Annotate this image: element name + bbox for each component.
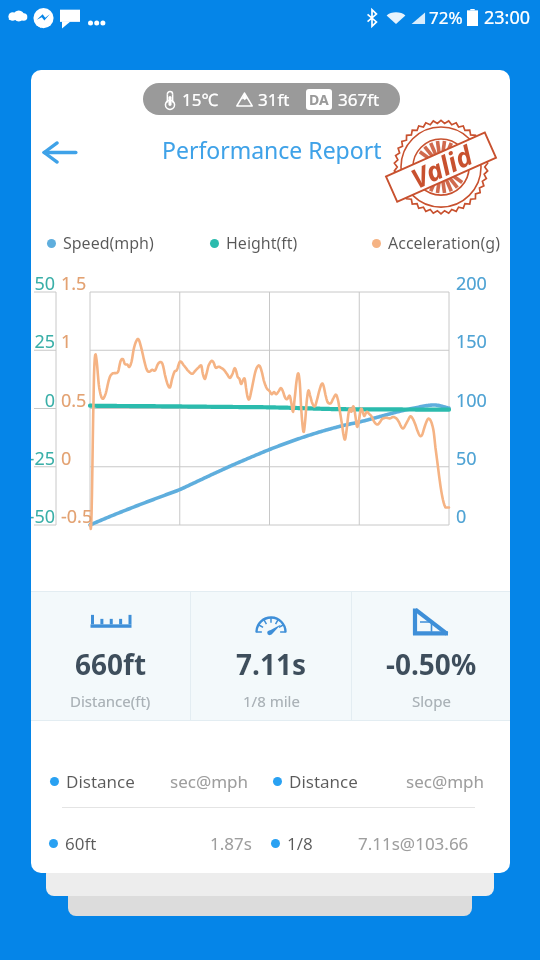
staticText: -50 <box>31 504 55 528</box>
staticText: 1.5 <box>61 271 87 295</box>
staticText: 1 <box>61 329 72 353</box>
button[interactable]: Height(ft) <box>210 231 298 255</box>
staticText: 1/8 mile <box>243 691 300 711</box>
staticText: -0.50% <box>386 645 477 683</box>
staticText: Acceleration(g) <box>388 232 500 254</box>
staticText: 7.11s <box>236 645 306 683</box>
button[interactable]: 60ft <box>49 830 97 856</box>
staticText: Distance <box>66 770 135 793</box>
button[interactable]: 1/8 <box>271 830 313 856</box>
staticText: Distance <box>289 770 358 793</box>
staticText: Performance Report <box>162 134 382 164</box>
staticText: 7.11s@103.66 <box>358 832 469 855</box>
button[interactable]: sec@mph <box>170 768 249 794</box>
staticText: 0.5 <box>61 388 87 412</box>
staticText: -25 <box>31 446 55 470</box>
button[interactable]: -0.50% <box>352 591 510 721</box>
button[interactable]: Distance <box>273 768 358 794</box>
staticText: Distance(ft) <box>70 691 151 711</box>
staticText: Valid <box>405 136 478 197</box>
staticText: 72% <box>429 6 463 29</box>
staticText: 50 <box>456 446 477 470</box>
staticText: 200 <box>456 271 487 295</box>
staticText: 23:00 <box>484 5 531 30</box>
staticText: Slope <box>412 691 451 711</box>
staticText: 0 <box>456 504 467 528</box>
staticText: DA <box>309 90 329 109</box>
staticText: 31ft <box>258 88 290 111</box>
staticText: sec@mph <box>406 770 485 793</box>
staticText: 367ft <box>338 88 380 111</box>
staticText: 0 <box>61 446 72 470</box>
staticText: 150 <box>456 329 487 353</box>
staticText: Speed(mph) <box>63 232 154 254</box>
staticText: sec@mph <box>170 770 249 793</box>
button[interactable]: 7.11s <box>191 591 351 721</box>
staticText: 15℃ <box>182 88 219 111</box>
staticText: 25 <box>34 329 55 353</box>
button[interactable]: 660ft <box>31 591 190 721</box>
button[interactable]: Back <box>34 126 86 178</box>
staticText: 0 <box>44 388 55 412</box>
staticText: 1.87s <box>210 832 252 855</box>
staticText: 100 <box>456 388 487 412</box>
staticText: 60ft <box>65 832 97 855</box>
button[interactable]: 7.11s@103.66 <box>358 830 469 856</box>
button[interactable]: Distance <box>50 768 135 794</box>
button[interactable]: Acceleration(g) <box>372 231 500 255</box>
staticText: 1/8 <box>287 832 313 855</box>
button[interactable]: sec@mph <box>406 768 485 794</box>
staticText: Height(ft) <box>226 232 298 254</box>
staticText: 50 <box>34 271 55 295</box>
staticText: -0.5 <box>61 504 93 528</box>
button[interactable]: Speed(mph) <box>47 231 154 255</box>
button[interactable]: 1.87s <box>210 830 252 856</box>
staticText: 660ft <box>75 645 147 683</box>
